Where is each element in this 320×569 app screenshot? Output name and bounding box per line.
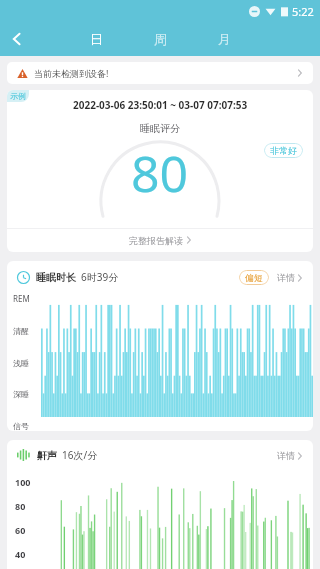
staticText: 月 [218, 31, 231, 47]
staticText: 清醒 [13, 326, 29, 336]
staticText: 浅睡 [13, 358, 29, 368]
staticText: 示例 [10, 91, 26, 101]
staticText: 80 [131, 139, 189, 207]
button[interactable]: 当前未检测到设备! [7, 62, 313, 84]
staticText: 6时39分 [81, 270, 119, 284]
staticText: 详情 [277, 450, 295, 461]
staticText: 日 [90, 31, 103, 47]
button[interactable]: 日 [84, 22, 108, 56]
staticText: 周 [154, 31, 167, 47]
staticText: 详情 [277, 272, 295, 283]
button[interactable]: 非常好 [264, 143, 303, 158]
button[interactable]: 详情 [277, 272, 303, 283]
staticText: 信号 [13, 421, 29, 431]
button[interactable]: Back [0, 22, 34, 56]
staticText: 60 [15, 524, 26, 536]
staticText: 5:22 [292, 4, 314, 19]
staticText: 鼾声 [37, 449, 57, 462]
button[interactable]: 月 [212, 22, 236, 56]
staticText: 2022-03-06 23:50:01 ~ 03-07 07:07:53 [73, 98, 248, 112]
staticText: 深睡 [13, 389, 29, 399]
staticText: 80 [15, 500, 26, 512]
staticText: 睡眠时长 [36, 271, 76, 284]
staticText: 40 [15, 548, 26, 560]
staticText: 100 [15, 476, 31, 488]
staticText: REM [13, 293, 30, 304]
button[interactable]: 完整报告解读 [7, 228, 313, 252]
staticText: 睡眠评分 [140, 122, 180, 135]
button[interactable]: 详情 [277, 450, 303, 461]
staticText: 16次/分 [62, 448, 98, 462]
staticText: 非常好 [270, 145, 297, 156]
staticText: 偏短 [245, 272, 263, 283]
button[interactable]: 周 [148, 22, 172, 56]
button[interactable]: 偏短 [239, 270, 269, 285]
staticText: 完整报告解读 [129, 235, 183, 246]
staticText: 当前未检测到设备! [34, 67, 109, 79]
